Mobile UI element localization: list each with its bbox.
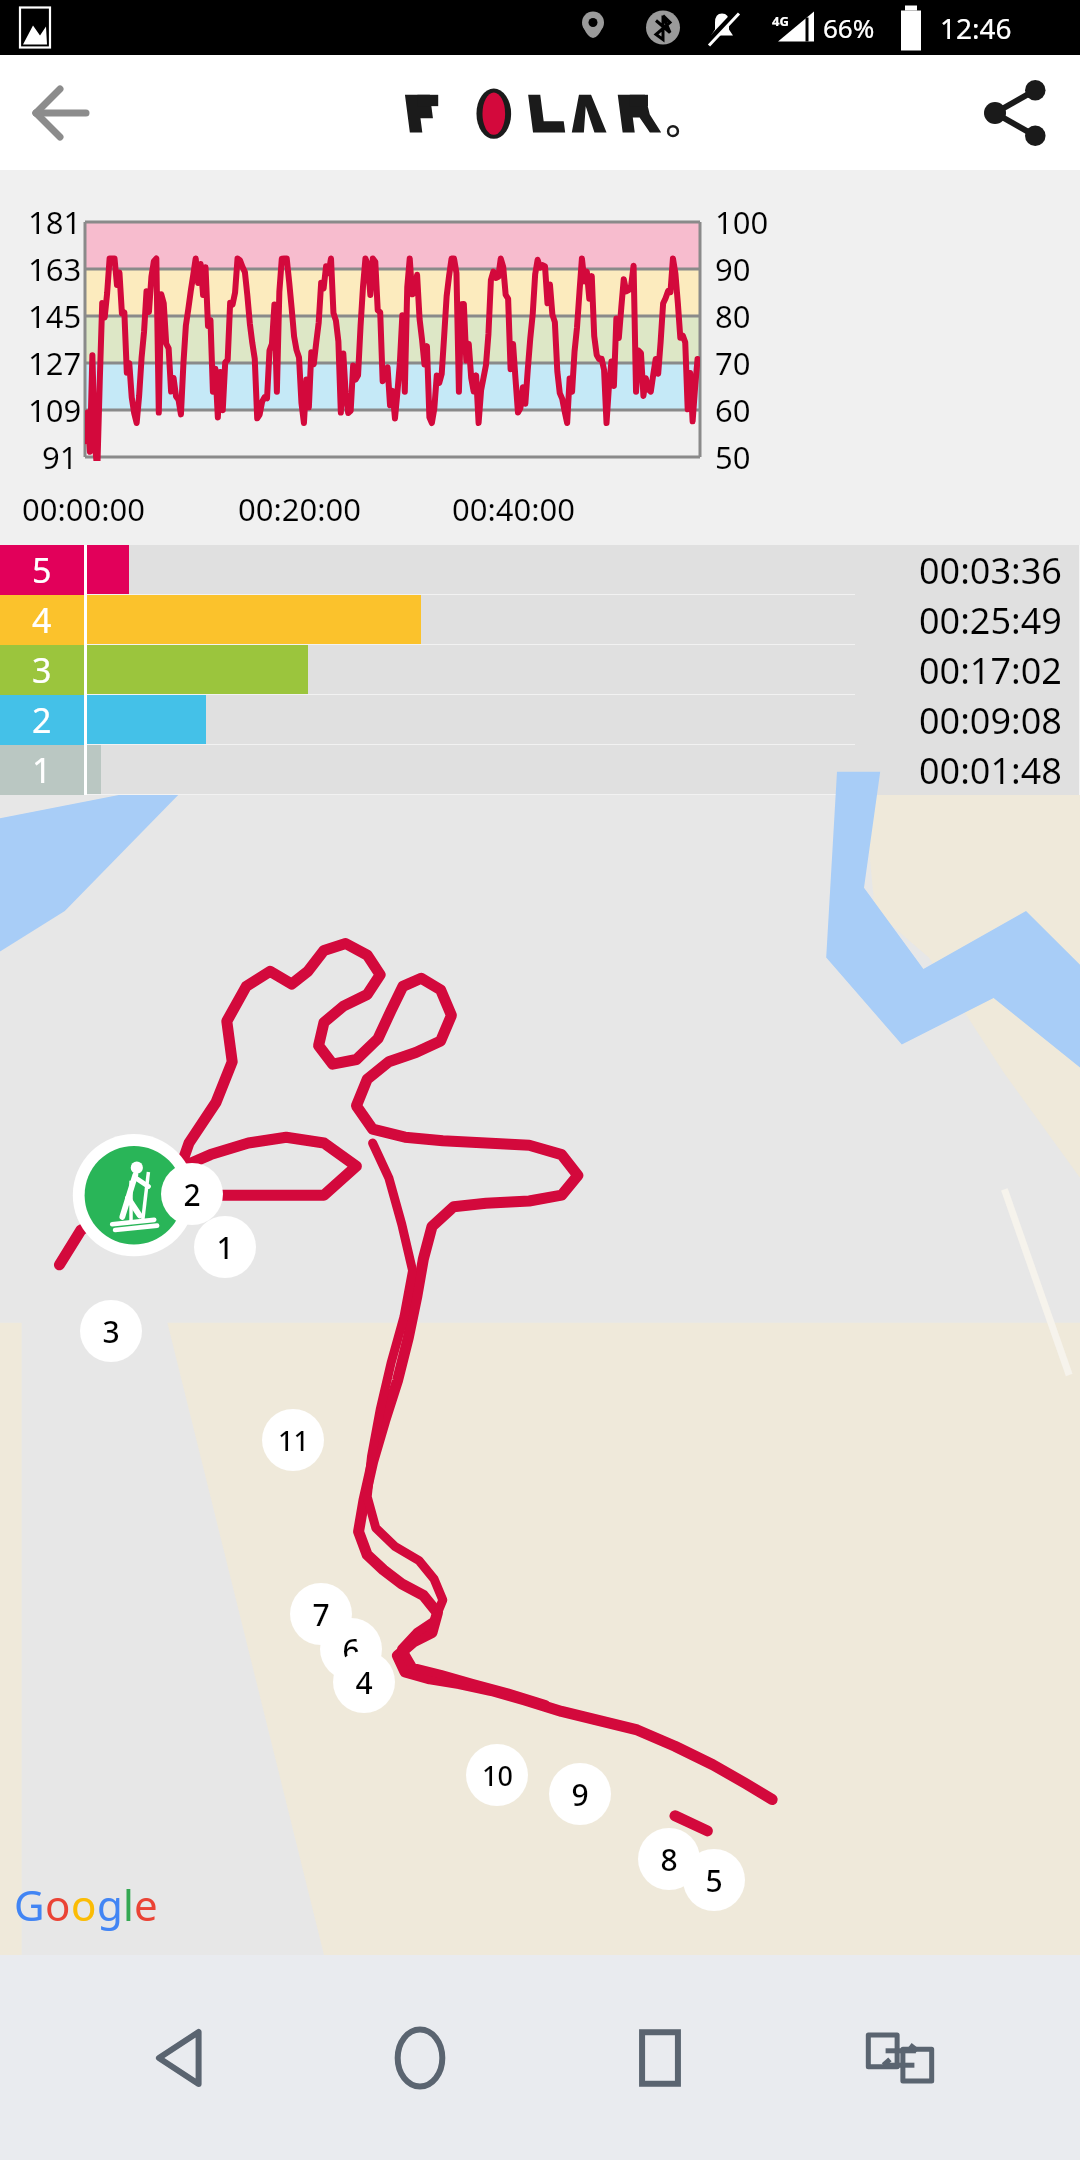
staticText: 5 [32, 547, 52, 593]
staticText: 9 [571, 1774, 589, 1815]
button[interactable]: 6 [320, 1618, 382, 1680]
staticText: 70 [715, 342, 751, 384]
staticText: 4 [355, 1662, 373, 1703]
staticText: 00:09:08 [919, 696, 1062, 745]
staticText: e [134, 1876, 158, 1933]
button[interactable]: 2 [161, 1163, 223, 1225]
button[interactable]: 4 [0, 595, 1080, 645]
button[interactable]: 4 [333, 1651, 395, 1713]
staticText: 3 [102, 1311, 120, 1352]
staticText: l [123, 1876, 134, 1933]
button[interactable]: Home [360, 1998, 480, 2118]
button[interactable]: 1 [194, 1216, 256, 1278]
staticText: 80 [715, 295, 751, 337]
staticText: 00:00:00 [22, 488, 146, 530]
button[interactable]: 11 [262, 1409, 324, 1471]
button[interactable]: Switch app [840, 1998, 960, 2118]
button[interactable]: 7 [290, 1583, 352, 1645]
staticText: 11 [278, 1422, 309, 1459]
staticText: o [45, 1876, 71, 1933]
staticText: 109 [28, 389, 82, 431]
button[interactable]: 1 [0, 745, 1080, 795]
staticText: 00:25:49 [919, 596, 1062, 645]
button[interactable]: 2 [0, 695, 1080, 745]
staticText: 145 [28, 295, 82, 337]
staticText: 127 [28, 342, 82, 384]
staticText: 6 [342, 1629, 360, 1670]
staticText: 12:46 [940, 9, 1012, 47]
staticText: 50 [715, 436, 751, 478]
button[interactable]: 5 [683, 1849, 745, 1911]
staticText: 91 [42, 436, 78, 478]
button[interactable]: Share [976, 75, 1052, 151]
staticText: 1 [216, 1227, 234, 1268]
button[interactable]: Recents [600, 1998, 720, 2118]
staticText: 00:17:02 [919, 646, 1062, 695]
button[interactable]: 5 [0, 545, 1080, 595]
staticText: 90 [715, 248, 751, 290]
staticText: o [71, 1876, 97, 1933]
staticText: 7 [312, 1594, 330, 1635]
staticText: 4G [772, 12, 789, 30]
staticText: 100 [715, 201, 769, 243]
staticText: 00:20:00 [238, 488, 362, 530]
staticText: 3 [32, 647, 52, 693]
staticText: g [97, 1876, 123, 1933]
staticText: 5 [705, 1860, 723, 1901]
button[interactable]: Back [20, 73, 100, 153]
button[interactable]: 9 [549, 1763, 611, 1825]
staticText: 1 [32, 747, 52, 793]
staticText: G [14, 1876, 45, 1933]
button[interactable]: 10 [466, 1744, 528, 1806]
button[interactable]: 3 [80, 1300, 142, 1362]
staticText: 00:40:00 [452, 488, 576, 530]
staticText: 163 [28, 248, 82, 290]
staticText: 00:03:36 [919, 546, 1062, 595]
staticText: 2 [183, 1174, 201, 1215]
staticText: 181 [28, 201, 82, 243]
button[interactable]: 3 [0, 645, 1080, 695]
staticText: 60 [715, 389, 751, 431]
staticText: 4 [32, 597, 52, 643]
button[interactable]: 8 [638, 1828, 700, 1890]
staticText: 00:01:48 [919, 746, 1062, 795]
button[interactable]: Back [120, 1998, 240, 2118]
staticText: 8 [660, 1839, 678, 1880]
button[interactable]: 2 [0, 795, 1080, 1955]
staticText: 2 [32, 697, 52, 743]
staticText: 10 [482, 1757, 513, 1794]
staticText: 66% [823, 10, 875, 45]
